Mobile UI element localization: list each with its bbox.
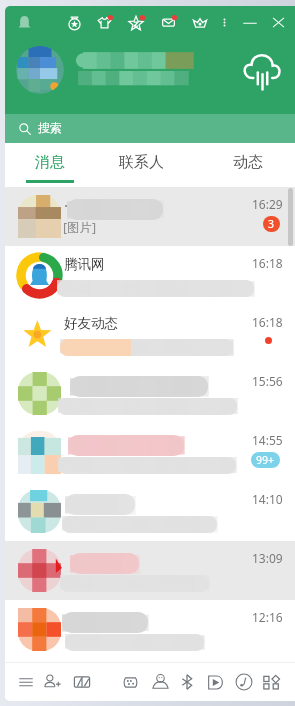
staticText: 99+ <box>256 453 275 467</box>
button[interactable]: 14:10 <box>5 482 295 541</box>
staticText: 16:18 <box>252 255 283 271</box>
button[interactable]: 消息 <box>15 143 85 187</box>
button[interactable]: Mail <box>161 15 176 30</box>
button[interactable]: 搜索 <box>5 114 295 143</box>
button[interactable]: Groups <box>72 672 92 692</box>
staticText: 好友动态 <box>64 315 118 332</box>
button[interactable]: 13:09 <box>5 541 295 600</box>
button[interactable]: Video <box>206 673 225 692</box>
button[interactable]: Menu <box>18 674 34 690</box>
staticText: 14:55 <box>252 432 283 448</box>
button[interactable]: Favourites <box>128 15 144 31</box>
button[interactable]: 好友动态 <box>5 305 295 364</box>
button[interactable]: VIP <box>192 15 208 31</box>
staticText: 动态 <box>233 153 263 172</box>
staticText: 16:29 <box>252 196 283 212</box>
staticText: 搜索 <box>38 120 62 135</box>
button[interactable]: QQ Home <box>17 15 32 30</box>
button[interactable]: 联系人 <box>106 143 176 187</box>
button[interactable]: Games <box>121 673 140 692</box>
staticText: 联系人 <box>119 153 164 172</box>
button[interactable]: Minimize <box>243 16 257 30</box>
button[interactable]: [图片] <box>5 187 295 246</box>
button[interactable]: Bluetooth <box>178 673 196 691</box>
button[interactable]: Dress up <box>97 15 112 30</box>
staticText: [图片] <box>63 219 97 236</box>
button[interactable]: All apps <box>263 674 280 691</box>
button[interactable]: Profile picture <box>16 46 64 94</box>
button[interactable]: More options <box>219 17 230 28</box>
staticText: 16:18 <box>252 314 283 330</box>
button[interactable]: 腾讯网 <box>5 246 295 305</box>
button[interactable]: Close <box>272 16 285 29</box>
staticText: 腾讯网 <box>64 256 105 273</box>
staticText: 13:09 <box>252 550 283 566</box>
button[interactable]: 12:16 <box>5 600 295 659</box>
staticText: 3 <box>268 217 275 231</box>
button[interactable]: Add friend <box>43 673 61 691</box>
button[interactable]: Music <box>235 673 253 691</box>
button[interactable]: 动态 <box>213 143 283 187</box>
staticText: 14:10 <box>252 491 283 507</box>
button[interactable]: Weather <box>238 50 283 95</box>
button[interactable]: 15:56 <box>5 364 295 423</box>
button[interactable]: 14:55 <box>5 423 295 482</box>
button[interactable]: Pet <box>151 673 170 692</box>
staticText: 15:56 <box>252 373 283 389</box>
staticText: 12:16 <box>252 609 283 625</box>
staticText: 消息 <box>35 153 65 172</box>
button[interactable]: Medal <box>67 15 82 30</box>
